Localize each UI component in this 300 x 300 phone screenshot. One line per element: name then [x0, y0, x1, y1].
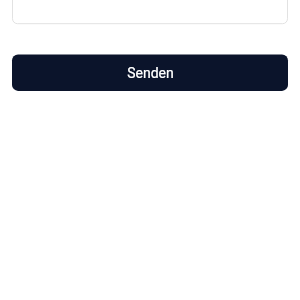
button[interactable]: Senden: [12, 55, 288, 91]
button[interactable]: Eingabefeld: [12, 0, 288, 24]
staticText: Senden: [127, 65, 174, 81]
